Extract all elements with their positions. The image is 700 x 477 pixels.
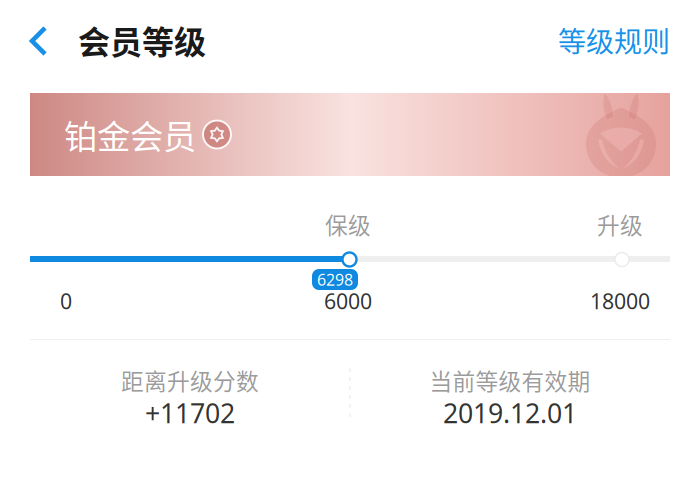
staticText: 会员等级 xyxy=(78,17,206,63)
button[interactable]: Back xyxy=(0,0,78,93)
button[interactable]: 等级规则 xyxy=(558,0,700,58)
staticText: 6298 xyxy=(317,269,353,290)
staticText: 距离升级分数 xyxy=(121,364,259,396)
staticText: +11702 xyxy=(145,395,235,431)
staticText: 等级规则 xyxy=(558,20,670,60)
staticText: 铂金会员 xyxy=(64,110,196,159)
staticText: 当前等级有效期 xyxy=(429,364,590,396)
staticText: 保级 xyxy=(325,208,371,240)
staticText: 18000 xyxy=(590,287,650,315)
staticText: 0 xyxy=(60,287,72,315)
staticText: 升级 xyxy=(597,208,643,240)
staticText: 2019.12.01 xyxy=(443,395,577,431)
staticText: 6000 xyxy=(324,287,372,315)
